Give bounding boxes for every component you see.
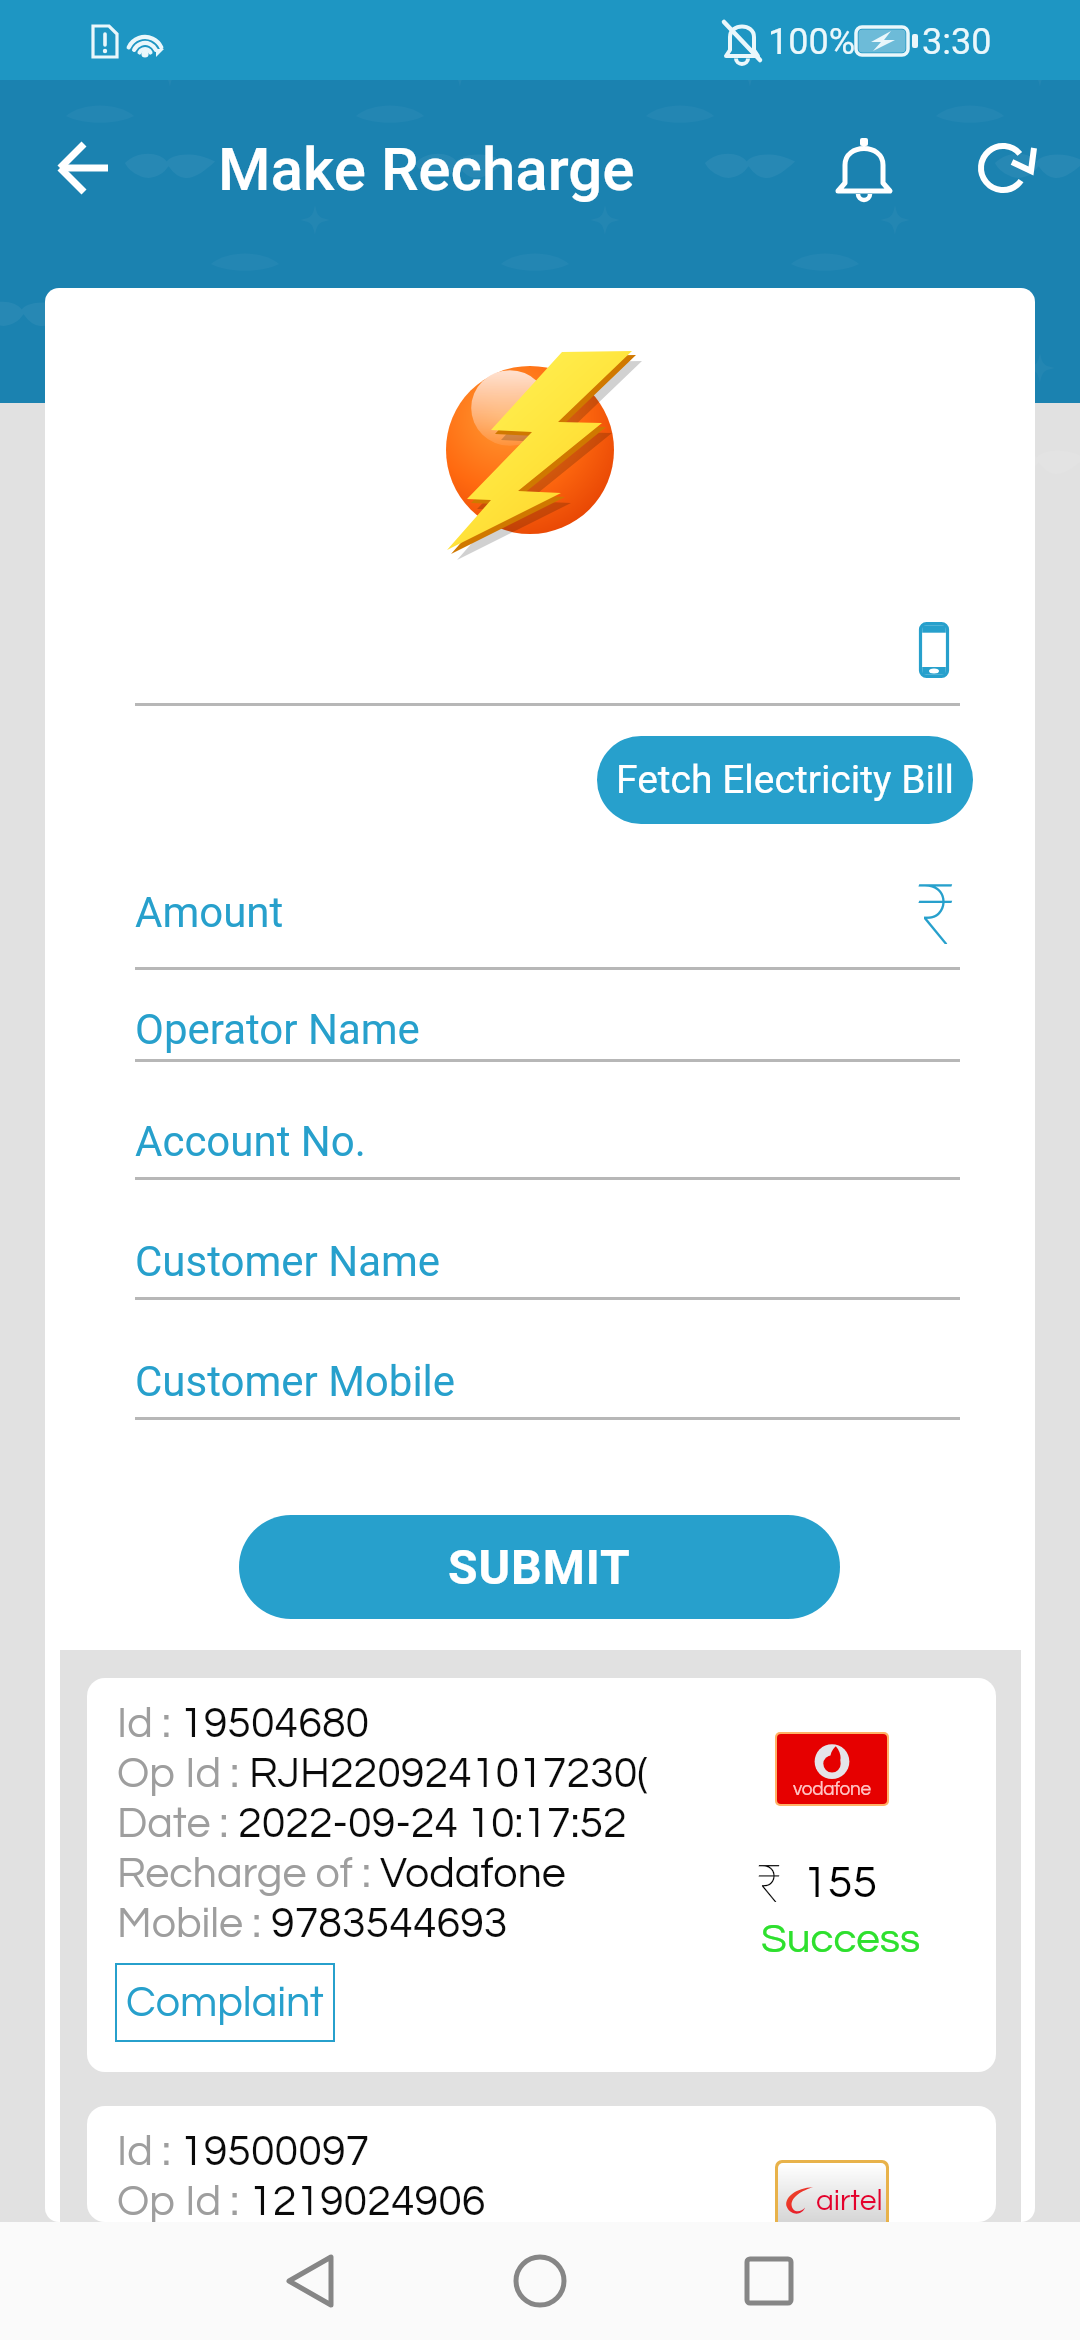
staticText: SUBMIT <box>448 1539 631 1595</box>
staticText: vodafone <box>793 1779 871 1799</box>
staticText: Success <box>761 1918 921 1961</box>
button[interactable]: Refresh <box>953 118 1053 218</box>
staticText: Make Recharge <box>218 134 635 204</box>
staticText: 19500097 <box>180 2130 370 2174</box>
button[interactable]: SUBMIT <box>239 1515 840 1619</box>
staticText: airtel <box>816 2185 883 2216</box>
staticText: RJH2209241017230( <box>249 1752 648 1796</box>
button[interactable]: Id : <box>87 2106 996 2222</box>
button[interactable]: Id : <box>87 1678 996 2072</box>
staticText: 9783544693 <box>271 1902 508 1946</box>
staticText: Mobile : <box>117 1902 271 1946</box>
button[interactable]: Complaint <box>115 1963 335 2042</box>
staticText: 100% <box>768 21 856 63</box>
button[interactable]: Fetch Electricity Bill <box>597 736 973 824</box>
staticText: Op Id : <box>117 2180 249 2222</box>
staticText: 1219024906 <box>249 2180 486 2222</box>
staticText: 155 <box>803 1860 878 1906</box>
staticText: Vodafone <box>380 1852 566 1896</box>
staticText: Id : <box>117 1702 180 1746</box>
staticText: Operator Name <box>135 1005 420 1054</box>
staticText: Customer Name <box>135 1237 441 1286</box>
staticText: ₹ <box>916 866 955 964</box>
button[interactable]: Back <box>42 118 142 218</box>
staticText: 19504680 <box>180 1702 370 1746</box>
staticText: Fetch Electricity Bill <box>616 757 954 803</box>
staticText: Op Id : <box>117 1752 249 1796</box>
staticText: ₹ <box>757 1854 781 1915</box>
staticText: Date : <box>117 1802 238 1846</box>
staticText: 3:30 <box>922 21 992 63</box>
staticText: Recharge of : <box>117 1852 380 1896</box>
staticText: Customer Mobile <box>135 1357 456 1406</box>
staticText: 2022-09-24 10:17:52 <box>238 1802 627 1846</box>
staticText: Account No. <box>135 1117 366 1166</box>
staticText: Amount <box>135 888 284 937</box>
staticText: Id : <box>117 2130 180 2174</box>
staticText: Complaint <box>126 1981 324 2025</box>
button[interactable]: Notifications <box>814 119 914 219</box>
